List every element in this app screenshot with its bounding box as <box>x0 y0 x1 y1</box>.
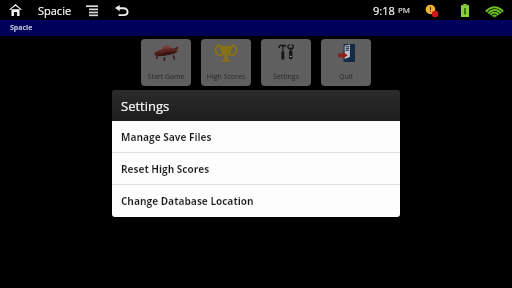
button[interactable]: Settings <box>261 39 311 86</box>
staticText: Change Database Location <box>121 194 254 208</box>
button[interactable]: Back <box>106 0 136 20</box>
staticText: Reset High Scores <box>121 162 210 176</box>
staticText: Spacie <box>10 23 33 33</box>
staticText: Settings <box>121 97 170 115</box>
staticText: Spacie <box>38 3 72 18</box>
button[interactable]: Change Database Location <box>112 185 400 217</box>
staticText: Start Game <box>141 72 191 82</box>
staticText: High Scores <box>201 72 251 82</box>
staticText: Quit <box>321 72 371 82</box>
button[interactable]: Quit <box>321 39 371 86</box>
staticText: 9:18 <box>373 3 395 18</box>
button[interactable]: Home <box>0 0 30 20</box>
staticText: Manage Save Files <box>121 130 212 144</box>
button[interactable]: Menu <box>78 0 106 20</box>
button[interactable]: High Scores <box>201 39 251 86</box>
button[interactable]: Start Game <box>141 39 191 86</box>
staticText: PM <box>398 4 411 15</box>
button[interactable]: Reset High Scores <box>112 153 400 185</box>
button[interactable]: Manage Save Files <box>112 121 400 153</box>
staticText: Settings <box>261 72 311 82</box>
